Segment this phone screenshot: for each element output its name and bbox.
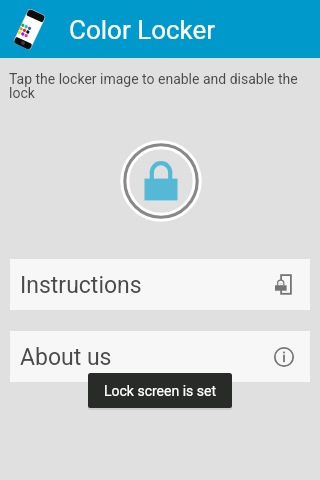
staticText: Instructions — [20, 272, 142, 299]
staticText: Lock screen is set — [104, 383, 216, 399]
button[interactable]: Toggle lock — [118, 138, 204, 224]
staticText: About us — [20, 344, 112, 371]
staticText: Lock screen is set — [104, 375, 216, 391]
button[interactable]: Instructions — [10, 259, 310, 310]
staticText: Tap the locker image to enable and disab… — [9, 71, 304, 102]
button[interactable]: About us — [10, 331, 310, 382]
staticText: Color Locker — [69, 15, 216, 45]
